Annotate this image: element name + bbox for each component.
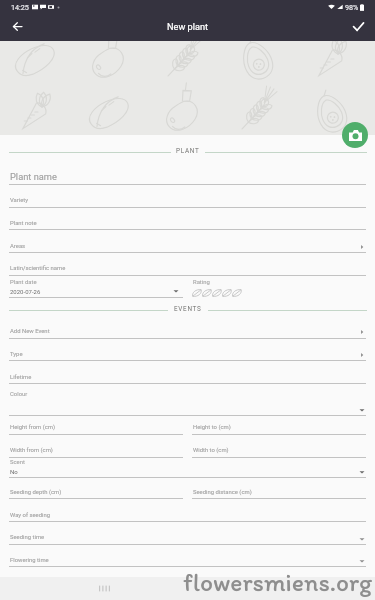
button[interactable] [9,552,366,567]
button[interactable] [9,324,366,339]
button[interactable] [9,391,366,416]
staticText: Seeding depth (cm) [10,489,62,496]
button[interactable]: Rating [202,288,212,298]
staticText: Plant note [10,220,37,227]
staticText: Lifetime [10,374,32,381]
staticText: Scent [10,459,25,466]
button[interactable] [192,443,366,458]
button[interactable]: Rating [232,288,242,298]
button[interactable]: Back [4,13,31,40]
staticText: Seeding time [10,534,45,541]
button[interactable] [192,420,366,435]
staticText: 14:25 [11,3,29,11]
button[interactable] [9,420,183,435]
button[interactable] [192,484,366,499]
staticText: Latin/scientific name [10,265,66,272]
staticText: flowersmiens.org [183,567,373,598]
staticText: Way of seeding [10,512,51,519]
staticText: Colour [10,391,28,398]
staticText: PLANT [176,147,200,155]
button[interactable]: Save [345,13,372,40]
button[interactable] [9,170,366,184]
button[interactable] [9,530,366,545]
staticText: Plant date [10,279,37,286]
button[interactable] [9,369,366,384]
button[interactable] [9,193,366,208]
button[interactable] [9,215,366,230]
button[interactable] [9,279,183,298]
button[interactable]: Rating [192,288,202,298]
staticText: Width from (cm) [10,447,53,454]
staticText: No [10,468,18,475]
staticText: Flowering time [10,557,49,564]
button[interactable] [9,261,366,276]
staticText: Width to (cm) [193,447,229,454]
staticText: Rating [193,279,210,286]
button[interactable]: Rating [222,288,232,298]
staticText: Height from (cm) [10,424,55,431]
staticText: Add New Event [10,328,50,335]
staticText: New plant [167,21,209,32]
button[interactable] [9,507,366,522]
button[interactable] [9,459,366,478]
staticText: Plant name [10,171,57,182]
button[interactable] [9,443,183,458]
staticText: 2020-07-26 [10,288,41,295]
staticText: Height to (cm) [193,424,231,431]
staticText: EVENTS [174,305,202,313]
button[interactable]: Rating [212,288,222,298]
staticText: Type [10,351,23,358]
button[interactable]: Recent apps [99,584,110,593]
button[interactable] [9,238,366,253]
staticText: Variety [10,197,29,204]
staticText: 98% [345,3,359,11]
button[interactable]: Take photo [342,122,368,148]
button[interactable] [9,346,366,361]
staticText: Areas [10,243,26,250]
staticText: Seeding distance (cm) [193,489,252,496]
button[interactable] [9,484,183,499]
